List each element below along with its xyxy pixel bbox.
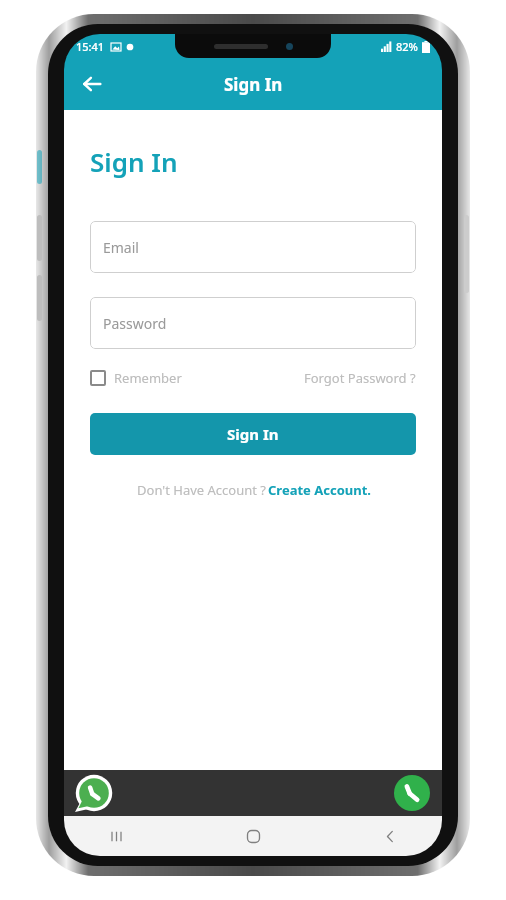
staticText: Remember bbox=[114, 369, 182, 387]
staticText: 82% bbox=[396, 39, 418, 54]
staticText: Don't Have Account ? bbox=[135, 481, 268, 499]
staticText: Sign In bbox=[227, 424, 279, 444]
button[interactable]: Password bbox=[90, 297, 416, 349]
staticText: 15:41 bbox=[76, 39, 105, 54]
button[interactable]: Back bbox=[72, 64, 112, 104]
button[interactable]: Create Account. bbox=[268, 481, 371, 499]
button[interactable]: Forgot Password ? bbox=[304, 369, 416, 387]
staticText: Email bbox=[103, 238, 139, 257]
button[interactable]: Call bbox=[392, 773, 432, 813]
staticText: Password bbox=[103, 314, 167, 333]
button[interactable]: Sign In bbox=[90, 413, 416, 455]
button[interactable]: WhatsApp bbox=[74, 773, 114, 813]
button[interactable]: Email bbox=[90, 221, 416, 273]
button[interactable]: Remember bbox=[90, 369, 182, 387]
button[interactable]: Back bbox=[372, 818, 408, 854]
staticText: Sign In bbox=[90, 144, 178, 179]
staticText: Sign In bbox=[224, 73, 283, 96]
button[interactable]: Home bbox=[235, 818, 271, 854]
button[interactable]: Recents bbox=[98, 818, 134, 854]
